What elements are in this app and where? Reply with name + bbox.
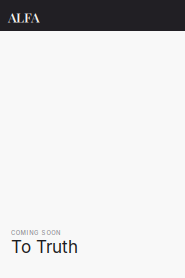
staticText: COMING SOON (11, 229, 60, 236)
staticText: To Truth (11, 236, 78, 257)
staticText: ALFA (8, 8, 40, 26)
button[interactable]: ALFA (0, 1, 46, 30)
